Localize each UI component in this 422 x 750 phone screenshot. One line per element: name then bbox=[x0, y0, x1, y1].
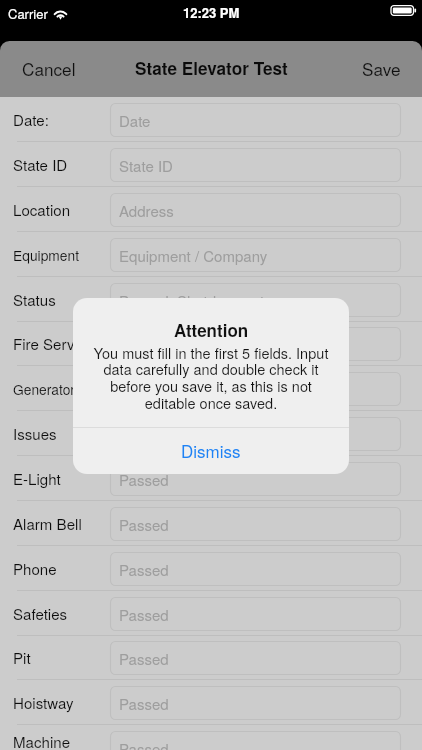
staticText: Passed bbox=[119, 469, 169, 490]
button[interactable]: Alarm Bell bbox=[0, 501, 422, 546]
button[interactable]: Hoistway bbox=[0, 680, 422, 725]
staticText: Cancel bbox=[22, 56, 76, 81]
staticText: Dismiss bbox=[181, 438, 241, 462]
button[interactable]: Save bbox=[348, 47, 422, 90]
staticText: E-Light bbox=[13, 468, 61, 490]
button[interactable]: Fire Service bbox=[0, 321, 422, 366]
staticText: Alarm Bell bbox=[13, 513, 82, 535]
staticText: Phone bbox=[13, 558, 57, 580]
staticText: Status bbox=[13, 289, 56, 311]
staticText: Passed, Shutdown, etc bbox=[119, 290, 272, 311]
button[interactable]: Pit bbox=[0, 635, 422, 680]
other: Wi-Fi bbox=[53, 8, 68, 19]
staticText: Carrier bbox=[8, 4, 48, 23]
staticText: Date bbox=[119, 110, 151, 131]
button[interactable]: Issues bbox=[0, 411, 422, 456]
button[interactable]: Phone bbox=[0, 546, 422, 591]
button[interactable]: Location bbox=[0, 187, 422, 232]
staticText: Machine bbox=[13, 731, 71, 750]
staticText: Passed bbox=[119, 648, 169, 669]
staticText: Passed bbox=[119, 693, 169, 714]
button[interactable]: Status bbox=[0, 277, 422, 322]
staticText: Save bbox=[362, 56, 401, 81]
staticText: Passed bbox=[119, 559, 169, 580]
staticText: Passed bbox=[119, 604, 169, 625]
button[interactable]: Equipment bbox=[0, 232, 422, 277]
staticText: Safeties bbox=[13, 603, 68, 625]
button[interactable]: Cancel bbox=[0, 47, 90, 90]
staticText: Attention bbox=[174, 318, 249, 342]
staticText: Equipment bbox=[13, 245, 80, 265]
button[interactable]: Generator bbox=[0, 366, 422, 411]
staticText: You must fill in the first 5 fields. Inp… bbox=[90, 342, 332, 414]
staticText: State Elevator Test bbox=[135, 56, 288, 81]
staticText: Fire Service bbox=[13, 333, 94, 355]
button[interactable]: Safeties bbox=[0, 591, 422, 636]
button[interactable]: Date: bbox=[0, 97, 422, 142]
button[interactable]: Dismiss bbox=[73, 428, 349, 474]
staticText: Location bbox=[13, 199, 71, 221]
staticText: Issues bbox=[13, 423, 57, 445]
staticText: Pit bbox=[13, 647, 31, 669]
staticText: State ID bbox=[119, 155, 173, 176]
button[interactable]: State ID bbox=[0, 142, 422, 187]
other: Battery full bbox=[391, 4, 417, 17]
staticText: Passed bbox=[119, 424, 169, 445]
staticText: Passed bbox=[119, 334, 169, 355]
staticText: Passed bbox=[119, 379, 169, 400]
staticText: Generator bbox=[13, 379, 75, 399]
button[interactable]: E-Light bbox=[0, 456, 422, 501]
staticText: State ID bbox=[13, 154, 68, 176]
staticText: Passed bbox=[119, 514, 169, 535]
button[interactable]: Machine bbox=[0, 725, 422, 750]
staticText: Equipment / Company bbox=[119, 245, 268, 266]
staticText: Address bbox=[119, 200, 174, 221]
staticText: Hoistway bbox=[13, 692, 74, 714]
staticText: Date: bbox=[13, 109, 49, 131]
staticText: Passed bbox=[119, 738, 169, 750]
staticText: 12:23 PM bbox=[183, 3, 240, 22]
